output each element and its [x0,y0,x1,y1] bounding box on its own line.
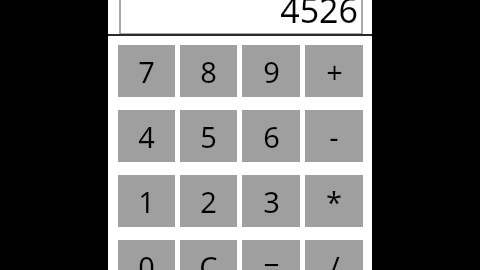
button[interactable]: 4526 [120,0,362,34]
staticText: 6 [263,117,280,156]
staticText: 5 [200,117,217,156]
button[interactable]: * [305,175,363,227]
button[interactable]: = [242,240,300,270]
staticText: 1 [138,182,155,221]
button[interactable]: 4 [118,110,175,162]
staticText: 2 [200,182,217,221]
staticText: 0 [138,247,155,270]
button[interactable]: 8 [180,45,237,97]
button[interactable]: 6 [242,110,300,162]
staticText: 8 [200,52,217,91]
staticText: 3 [263,182,280,221]
button[interactable]: / [305,240,363,270]
button[interactable]: C [180,240,237,270]
staticText: 4 [138,117,155,156]
staticText: C [199,247,218,270]
staticText: 7 [138,52,155,91]
button[interactable]: 3 [242,175,300,227]
button[interactable]: 2 [180,175,237,227]
staticText: 4526 [280,0,358,33]
button[interactable]: 5 [180,110,237,162]
button[interactable]: - [305,110,363,162]
button[interactable]: 9 [242,45,300,97]
staticText: / [329,247,340,270]
staticText: * [326,182,342,221]
button[interactable]: + [305,45,363,97]
staticText: + [326,52,343,91]
staticText: = [263,247,280,270]
button[interactable]: 0 [118,240,175,270]
staticText: 9 [263,52,280,91]
staticText: - [329,117,339,156]
button[interactable]: 7 [118,45,175,97]
button[interactable]: 1 [118,175,175,227]
